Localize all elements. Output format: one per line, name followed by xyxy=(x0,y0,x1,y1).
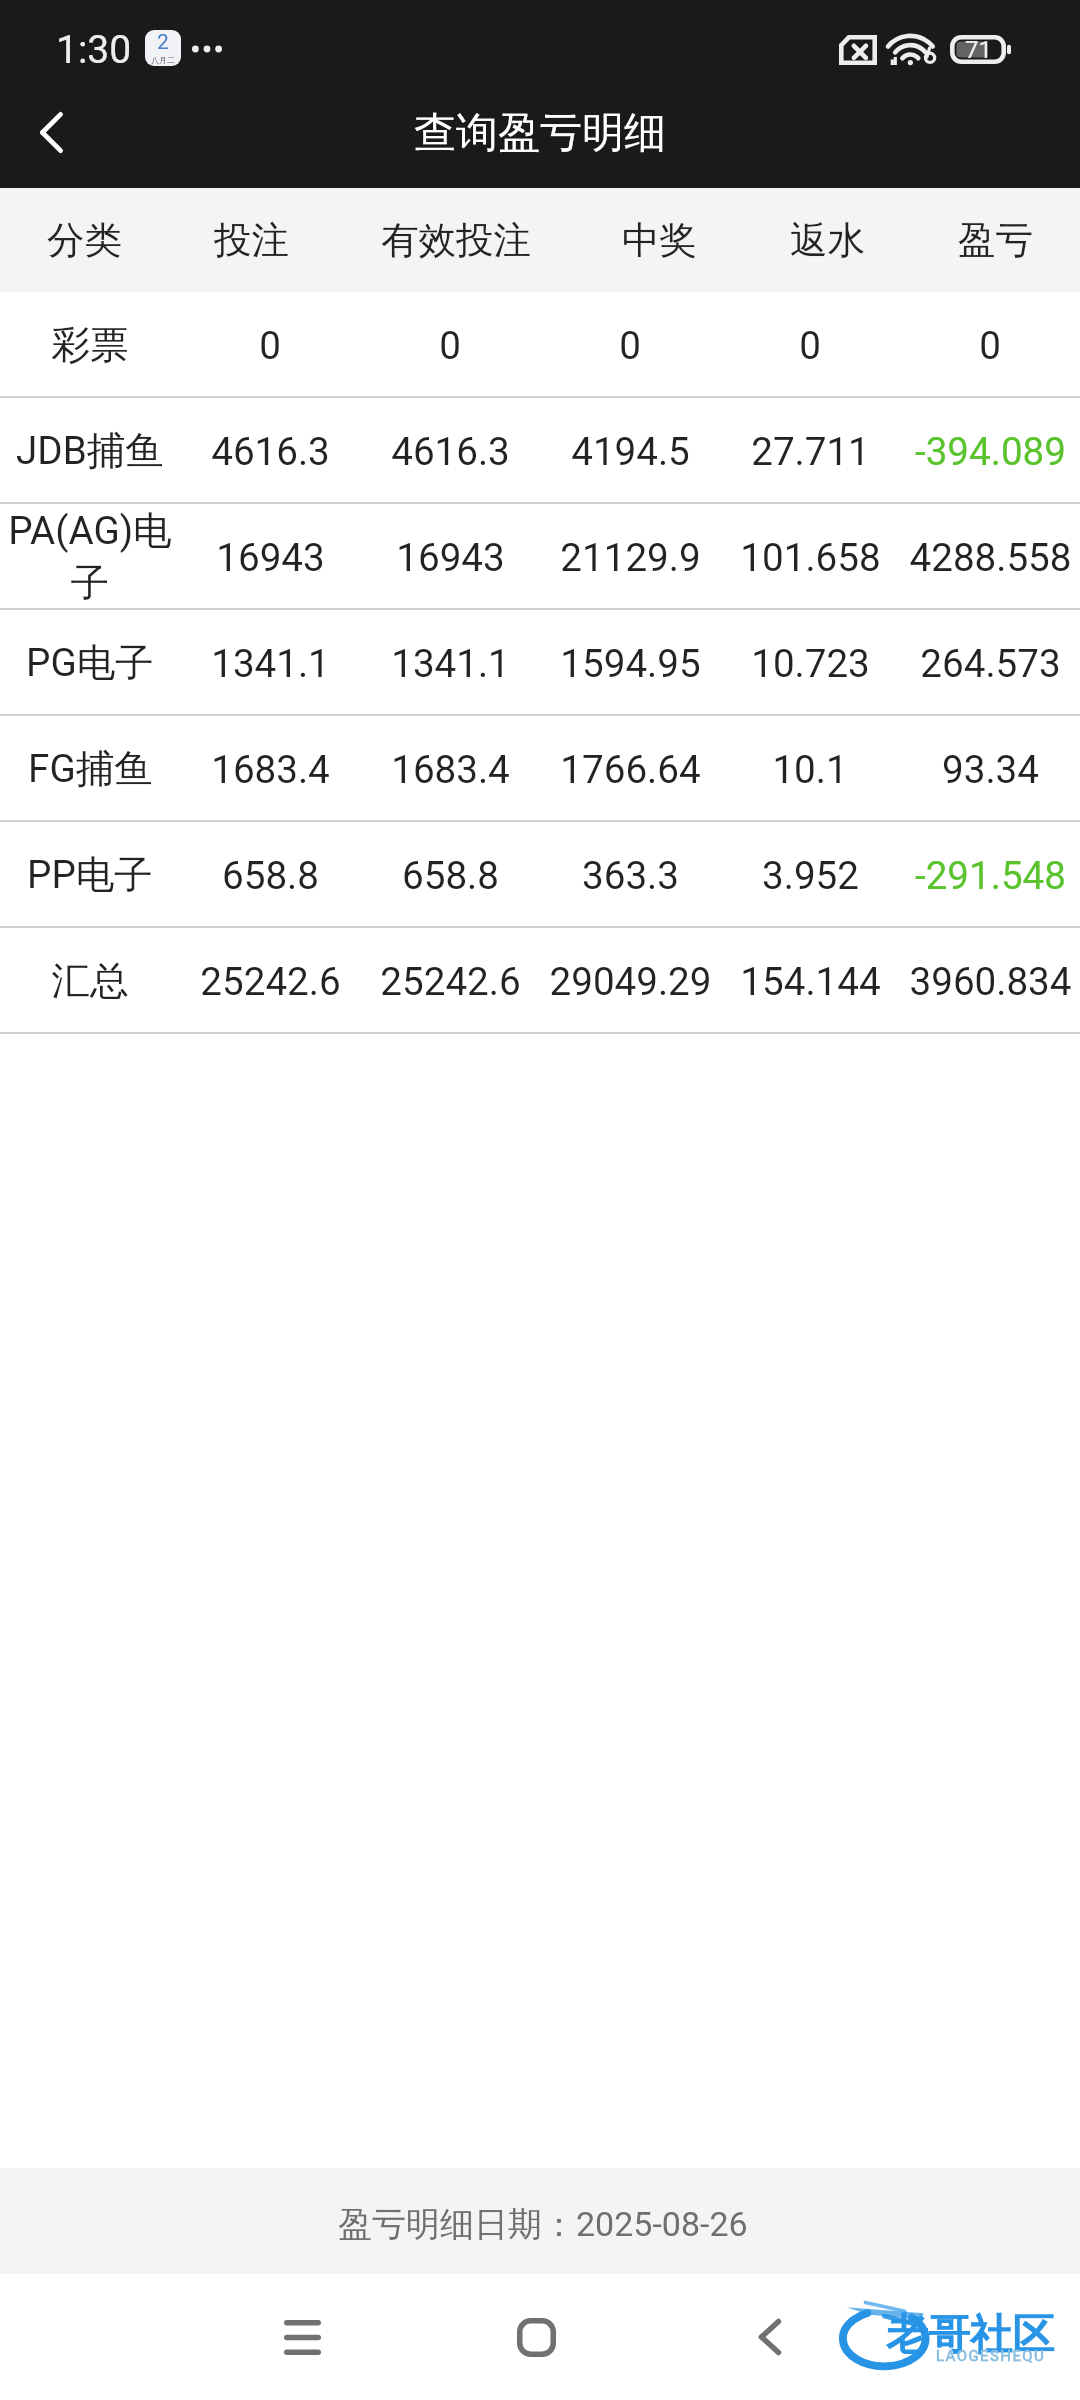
staticText: 16943 xyxy=(396,535,505,580)
staticText: 101.658 xyxy=(740,535,881,580)
staticText: 汇总 xyxy=(51,957,129,1006)
staticText: 10.1 xyxy=(772,747,848,792)
staticText: 658.8 xyxy=(402,853,499,898)
staticText: 25242.6 xyxy=(380,959,521,1004)
button[interactable]: Home xyxy=(476,2277,596,2397)
staticText: 0 xyxy=(799,323,821,368)
staticText: 3.952 xyxy=(762,853,859,898)
button[interactable]: Recent apps xyxy=(242,2277,362,2397)
staticText: 0 xyxy=(979,323,1001,368)
staticText: 1594.95 xyxy=(560,641,701,686)
staticText: PP电子 xyxy=(27,851,153,900)
staticText: 老哥社区 xyxy=(886,2309,1054,2362)
button[interactable]: FG捕鱼 xyxy=(0,716,1080,822)
staticText: 4616.3 xyxy=(391,429,510,474)
button[interactable]: Back xyxy=(710,2277,830,2397)
staticText: 71 xyxy=(965,36,992,64)
staticText: 2 xyxy=(157,30,169,55)
staticText: 1683.4 xyxy=(211,747,330,792)
staticText: 八月二 xyxy=(151,55,175,65)
staticText: 彩票 xyxy=(51,321,129,370)
staticText: 27.711 xyxy=(751,429,870,474)
staticText: 0 xyxy=(259,323,281,368)
staticText: JDB捕鱼 xyxy=(16,427,164,476)
button[interactable]: 汇总 xyxy=(0,928,1080,1034)
staticText: 分类 xyxy=(47,217,122,264)
staticText: 3960.834 xyxy=(909,959,1072,1004)
staticText: 查询盈亏明细 xyxy=(414,107,666,160)
staticText: PA(AG)电子 xyxy=(2,507,178,607)
button[interactable]: PA(AG)电子 xyxy=(0,504,1080,610)
staticText: 盈亏 xyxy=(958,217,1033,264)
staticText: 21129.9 xyxy=(560,535,701,580)
button[interactable]: PG电子 xyxy=(0,610,1080,716)
staticText: PG电子 xyxy=(26,639,154,688)
staticText: 93.34 xyxy=(942,747,1039,792)
staticText: 154.144 xyxy=(740,959,881,1004)
button[interactable]: JDB捕鱼 xyxy=(0,398,1080,504)
staticText: 363.3 xyxy=(582,853,679,898)
staticText: 盈亏明细日期：2025-08-26 xyxy=(338,2203,748,2246)
staticText: -394.089 xyxy=(915,429,1066,474)
staticText: FG捕鱼 xyxy=(28,745,153,794)
staticText: LAOGESHEQU xyxy=(936,2347,1046,2365)
staticText: 1683.4 xyxy=(391,747,510,792)
staticText: 中奖 xyxy=(622,217,697,264)
staticText: 658.8 xyxy=(222,853,319,898)
staticText: -291.548 xyxy=(915,853,1066,898)
button[interactable]: PP电子 xyxy=(0,822,1080,928)
staticText: 264.573 xyxy=(920,641,1061,686)
staticText: 4288.558 xyxy=(909,535,1072,580)
staticText: 1:30 xyxy=(56,27,132,73)
staticText: 29049.29 xyxy=(549,959,712,1004)
staticText: 投注 xyxy=(214,217,289,264)
staticText: 有效投注 xyxy=(381,217,531,264)
staticText: 1341.1 xyxy=(211,641,330,686)
button[interactable]: 彩票 xyxy=(0,292,1080,398)
staticText: 10.723 xyxy=(751,641,870,686)
staticText: 4194.5 xyxy=(571,429,690,474)
staticText: 25242.6 xyxy=(200,959,341,1004)
staticText: 0 xyxy=(439,323,461,368)
button[interactable]: 老哥社区 xyxy=(844,2274,1074,2400)
button[interactable]: Back xyxy=(0,94,102,188)
staticText: 返水 xyxy=(790,217,865,264)
staticText: 16943 xyxy=(216,535,325,580)
staticText: 0 xyxy=(619,323,641,368)
staticText: 4616.3 xyxy=(211,429,330,474)
staticText: 1766.64 xyxy=(560,747,701,792)
staticText: 1341.1 xyxy=(391,641,510,686)
